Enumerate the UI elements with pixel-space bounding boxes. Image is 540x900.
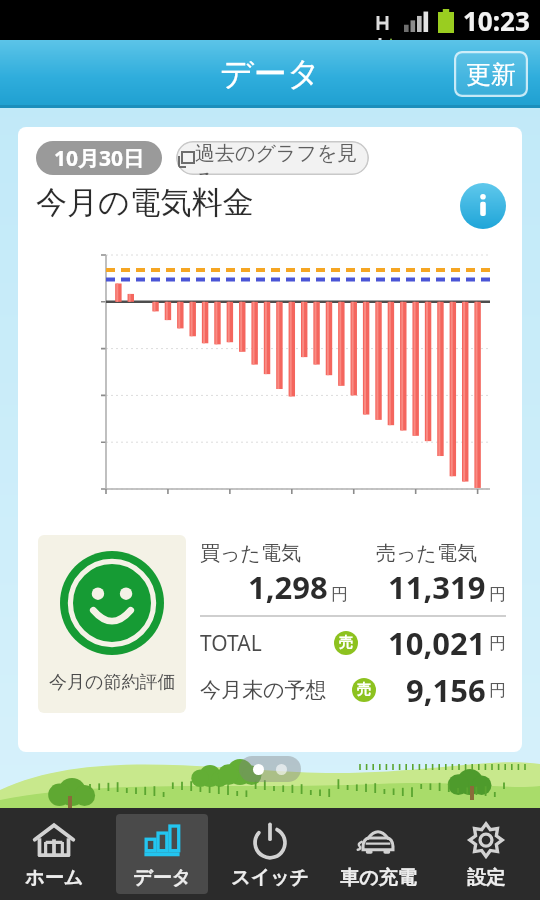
staticText: 売った電気 xyxy=(376,541,477,566)
staticText: データ xyxy=(133,866,191,890)
staticText: ホーム xyxy=(25,866,83,890)
button[interactable]: 10月30日 xyxy=(36,141,162,175)
button[interactable]: 車の充電 xyxy=(332,814,424,894)
staticText: TOTAL xyxy=(200,629,262,658)
button[interactable]: 今月の節約評価 xyxy=(38,535,186,713)
staticText: 円 xyxy=(489,633,506,654)
button[interactable]: ホーム xyxy=(8,814,100,894)
staticText: 11,319 xyxy=(388,566,486,608)
staticText: 売 xyxy=(339,634,353,652)
staticText: 過去のグラフを見る xyxy=(195,141,369,175)
staticText: 買った電気 xyxy=(200,541,301,566)
staticText: 売 xyxy=(357,681,371,699)
staticText: 今月の節約評価 xyxy=(49,671,176,694)
staticText: 円 xyxy=(331,584,348,605)
staticText: 1,298 xyxy=(248,566,328,608)
staticText: スイッチ xyxy=(231,866,309,890)
staticText: データ xyxy=(220,53,321,95)
staticText: 10月30日 xyxy=(54,144,145,173)
button[interactable]: 設定 xyxy=(440,814,532,894)
staticText: 10,021 xyxy=(388,622,486,664)
button[interactable]: 過去のグラフを見る xyxy=(176,141,369,175)
button[interactable]: 情報 xyxy=(460,183,506,229)
staticText: 更新 xyxy=(466,59,516,90)
button[interactable]: スイッチ xyxy=(224,814,316,894)
staticText: 今月末の予想 xyxy=(200,677,327,703)
staticText: 設定 xyxy=(467,866,505,890)
staticText: 円 xyxy=(489,584,506,605)
button[interactable]: 更新 xyxy=(454,51,528,97)
staticText: 10:23 xyxy=(463,3,530,38)
staticText: 今月の電気料金 xyxy=(36,183,254,222)
staticText: 円 xyxy=(489,680,506,701)
staticText: 車の充電 xyxy=(340,866,417,890)
staticText: 9,156 xyxy=(406,669,486,711)
button[interactable]: データ xyxy=(116,814,208,894)
